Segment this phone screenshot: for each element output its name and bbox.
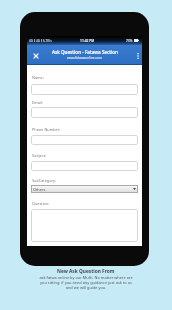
staticText: 11:42 PM [80, 38, 95, 42]
staticText: ask fatwa online by our Mufti. No matter… [39, 275, 133, 290]
staticText: Phone Number: [32, 127, 61, 132]
button[interactable] [31, 161, 138, 171]
staticText: SubCategory: [32, 178, 56, 183]
staticText: Ask Question - Fatawa Section [52, 49, 118, 55]
button[interactable] [134, 52, 141, 60]
staticText: Others [33, 187, 46, 192]
button[interactable] [31, 84, 138, 95]
staticText: Email: [32, 100, 43, 105]
button[interactable] [31, 209, 138, 242]
staticText: www.fatawaonline.com [67, 56, 102, 60]
staticText: Question: [32, 201, 50, 206]
staticText: New Ask Question From [57, 268, 115, 275]
staticText: 4G ll 4G ll 6.7K/s [29, 39, 52, 43]
staticText: Name: [32, 75, 44, 80]
button[interactable]: Others [31, 185, 138, 193]
staticText: 73% [126, 39, 133, 43]
button[interactable] [31, 51, 40, 60]
staticText: Subject: [32, 153, 47, 158]
button[interactable] [31, 135, 138, 145]
button[interactable] [31, 107, 138, 118]
